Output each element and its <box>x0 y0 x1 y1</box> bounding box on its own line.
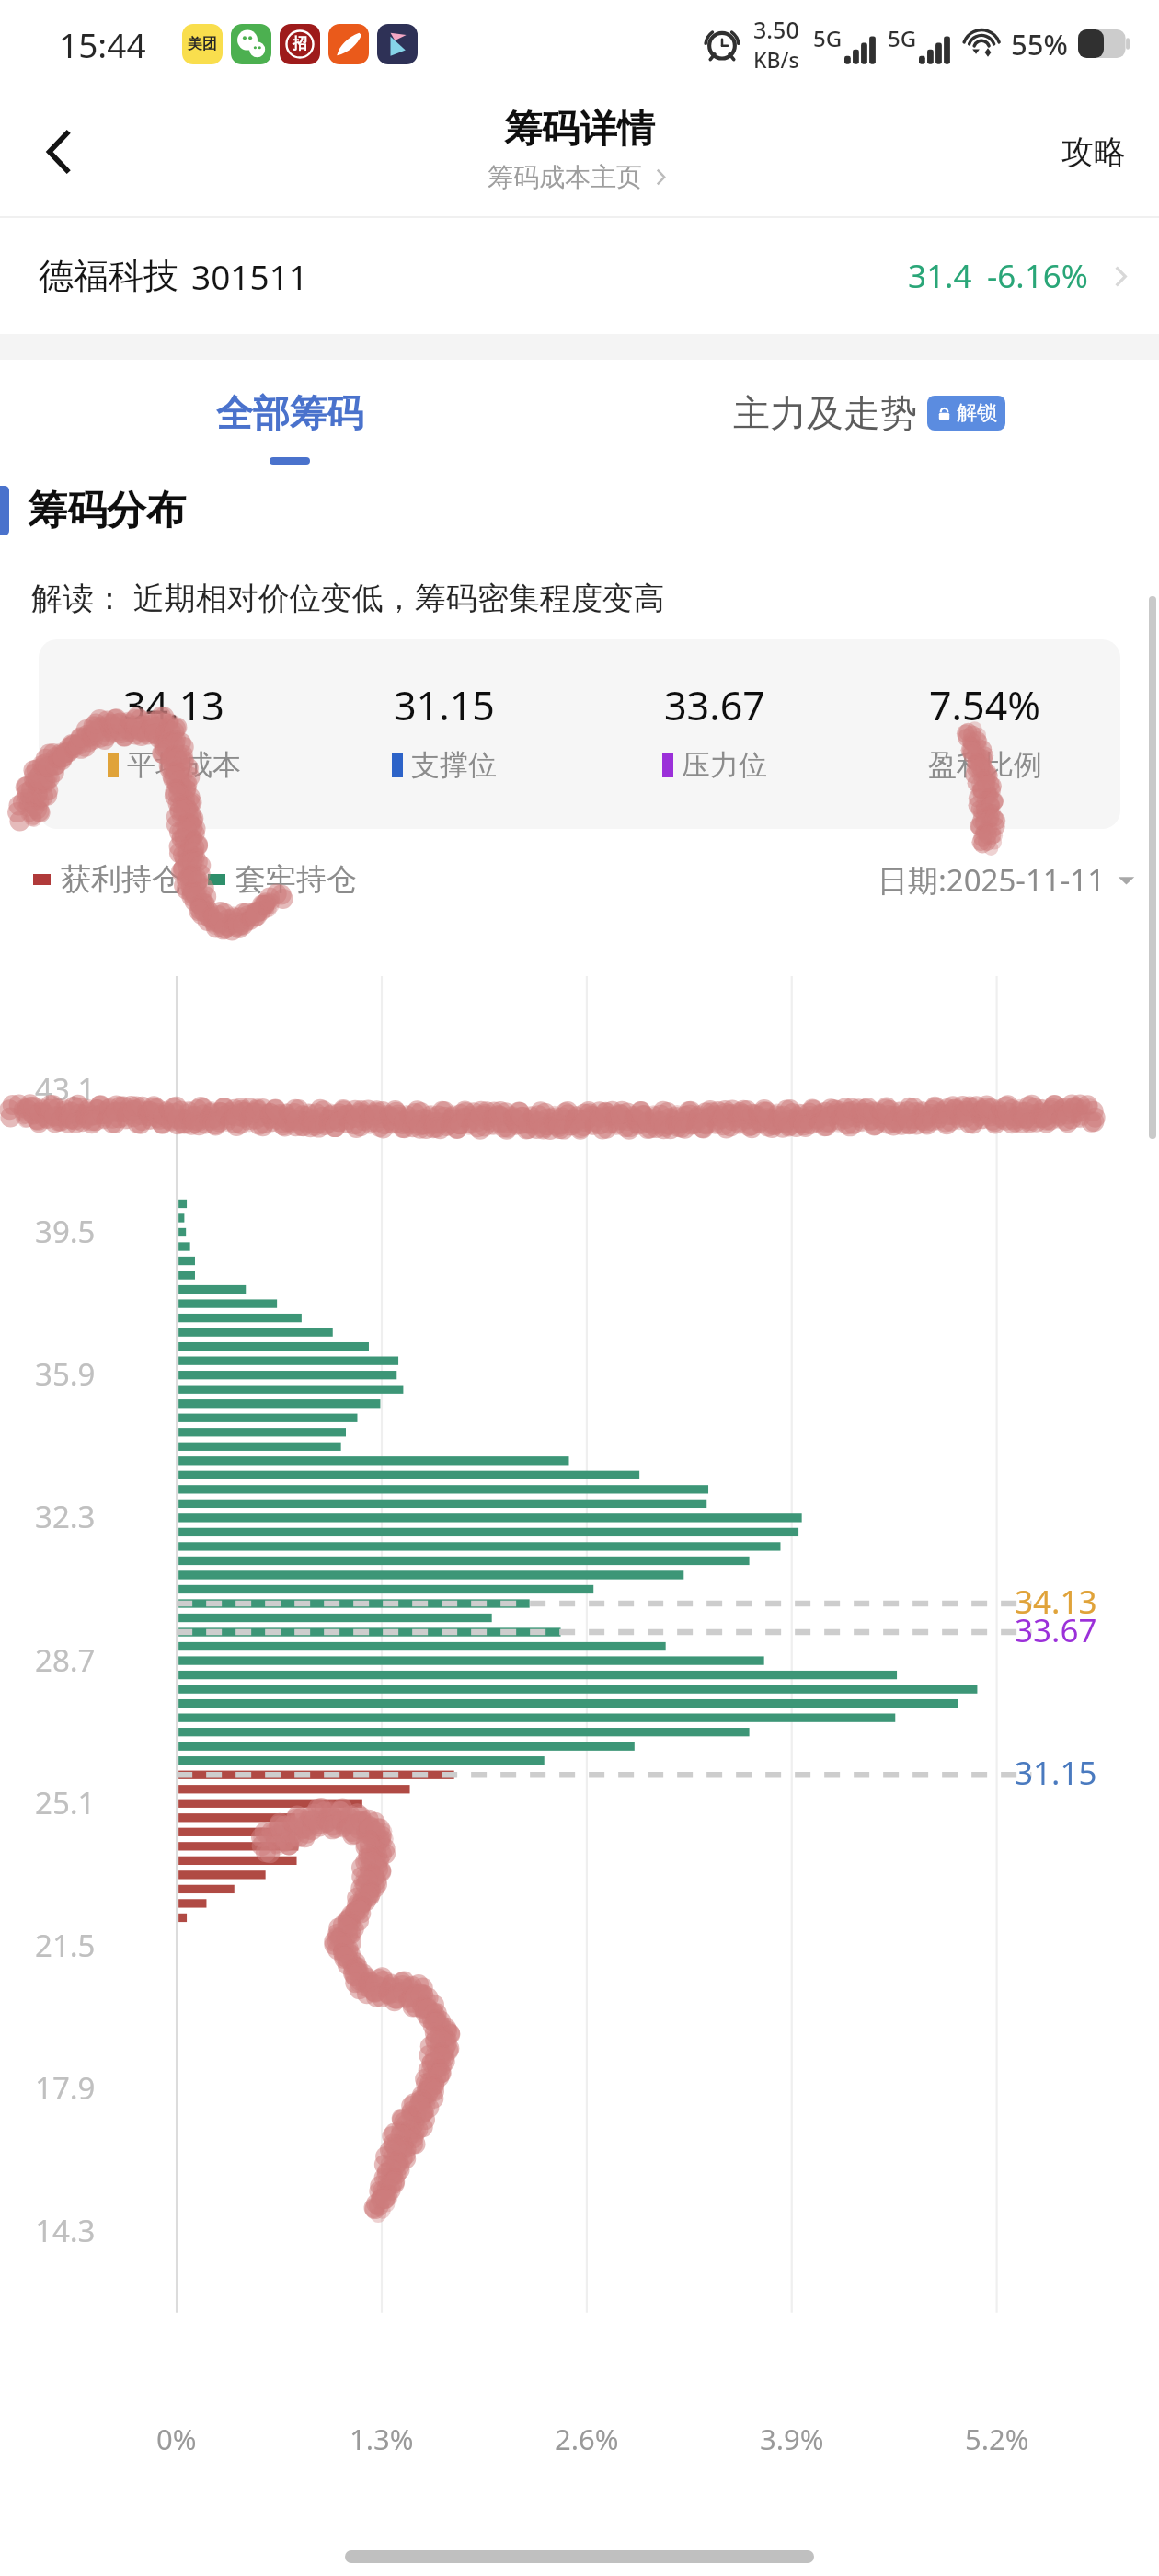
staticText: 31.15 <box>394 678 495 732</box>
staticText: 0% <box>156 2420 197 2458</box>
staticText: 主力及走势 <box>733 390 917 436</box>
button[interactable]: 攻略 <box>1061 132 1126 172</box>
staticText: 31.15 <box>1015 1751 1097 1795</box>
staticText: 17.9 <box>35 2067 96 2109</box>
staticText: 31.4 <box>908 254 972 298</box>
button[interactable]: 31.15 <box>309 678 579 783</box>
staticText: 5.2% <box>965 2420 1029 2458</box>
staticText: 33.67 <box>1015 1608 1097 1652</box>
button[interactable]: 33.67 <box>579 678 850 783</box>
staticText: 1.3% <box>350 2420 414 2458</box>
button[interactable]: 主力及走势 <box>579 360 1159 466</box>
staticText: 15:44 <box>59 21 146 67</box>
button[interactable]: 筹码成本主页 <box>488 161 671 193</box>
staticText: 套牢持仓 <box>235 860 357 899</box>
staticText: 美团 <box>188 35 217 53</box>
button[interactable]: 日期:2025-11-11 <box>878 859 1137 901</box>
staticText: 32.3 <box>35 1496 96 1537</box>
staticText: 德福科技 <box>39 254 178 298</box>
staticText: 25.1 <box>35 1782 96 1823</box>
staticText: 33.67 <box>664 678 765 732</box>
staticText: 14.3 <box>35 2210 96 2251</box>
staticText: 支撑位 <box>411 747 497 783</box>
button[interactable]: Back <box>13 105 107 199</box>
staticText: 获利持仓 <box>61 860 182 899</box>
staticText: 34.13 <box>1015 1580 1097 1624</box>
staticText: 5G <box>813 23 843 53</box>
staticText: 2.6% <box>555 2420 619 2458</box>
staticText: 筹码成本主页 <box>488 161 642 193</box>
staticText: 筹码详情 <box>504 106 655 154</box>
staticText: 5G <box>888 23 917 53</box>
staticText: 34.13 <box>123 678 224 732</box>
staticText: KB/s <box>753 45 799 74</box>
staticText: -6.16% <box>987 254 1088 298</box>
staticText: 3.9% <box>760 2420 824 2458</box>
staticText: 28.7 <box>35 1639 96 1681</box>
button[interactable]: 全部筹码 <box>0 360 579 466</box>
staticText: 301511 <box>191 253 308 299</box>
button[interactable]: 德福科技 <box>0 218 1159 334</box>
staticText: 3.50 <box>753 14 799 45</box>
staticText: 21.5 <box>35 1925 96 1966</box>
staticText: 全部筹码 <box>216 390 363 436</box>
staticText: 压力位 <box>682 747 767 783</box>
staticText: 7.54% <box>929 678 1041 732</box>
staticText: 解锁 <box>957 400 997 426</box>
staticText: 43.1 <box>35 1068 96 1110</box>
staticText: 平均成本 <box>127 747 241 783</box>
staticText: 筹码分布 <box>28 486 186 535</box>
staticText: 39.5 <box>35 1211 96 1252</box>
staticText: 攻略 <box>1061 132 1126 172</box>
staticText: 55% <box>1011 25 1068 63</box>
button[interactable]: 34.13 <box>39 678 309 783</box>
staticText: 招 <box>293 35 307 53</box>
staticText: 35.9 <box>35 1353 96 1395</box>
staticText: 解读： 近期相对价位变低，筹码密集程度变高 <box>31 576 665 618</box>
staticText: 盈利比例 <box>928 747 1042 783</box>
button[interactable]: 7.54% <box>850 678 1120 783</box>
staticText: 日期:2025-11-11 <box>878 859 1106 901</box>
